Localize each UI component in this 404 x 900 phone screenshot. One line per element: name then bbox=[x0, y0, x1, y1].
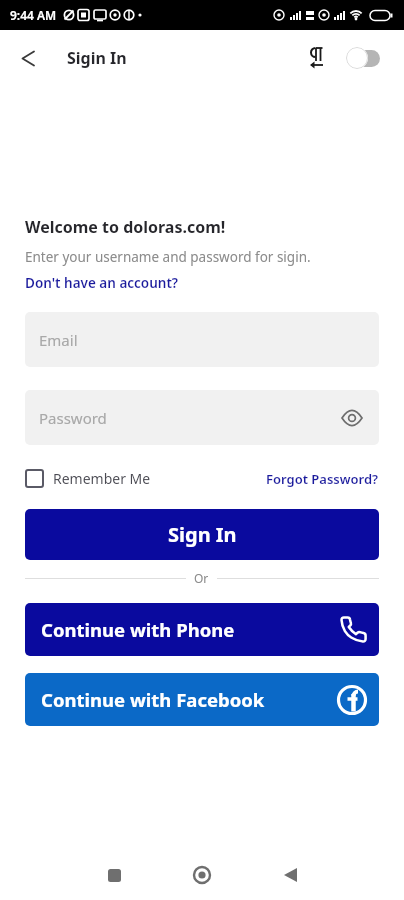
staticText: Remember Me bbox=[53, 469, 151, 488]
staticText: Or bbox=[194, 570, 209, 586]
button[interactable] bbox=[308, 47, 330, 69]
button[interactable] bbox=[182, 855, 222, 895]
staticText: Enter your username and password for sig… bbox=[25, 248, 311, 266]
staticText: Email bbox=[39, 330, 78, 350]
staticText: Sign In bbox=[168, 521, 237, 548]
staticText: Password bbox=[39, 408, 107, 428]
staticText: Continue with Facebook bbox=[41, 687, 265, 712]
button[interactable]: Password bbox=[25, 390, 379, 445]
staticText: Welcome to doloras.com! bbox=[25, 216, 226, 238]
staticText: Continue with Phone bbox=[41, 617, 235, 642]
button[interactable]: Continue with Phone bbox=[25, 603, 379, 656]
button[interactable]: Don't have an account? bbox=[25, 274, 179, 292]
button[interactable] bbox=[94, 855, 134, 895]
button[interactable]: Forgot Password? bbox=[266, 470, 379, 488]
button[interactable]: Continue with Facebook bbox=[25, 673, 379, 726]
button[interactable]: Sign In bbox=[25, 509, 379, 560]
button[interactable]: Remember Me bbox=[25, 469, 151, 488]
staticText: 9:44 AM bbox=[10, 7, 57, 23]
button[interactable] bbox=[270, 855, 310, 895]
button[interactable]: Email bbox=[25, 312, 379, 367]
button[interactable] bbox=[14, 44, 42, 72]
staticText: Sigin In bbox=[67, 47, 127, 69]
button[interactable] bbox=[346, 46, 380, 70]
